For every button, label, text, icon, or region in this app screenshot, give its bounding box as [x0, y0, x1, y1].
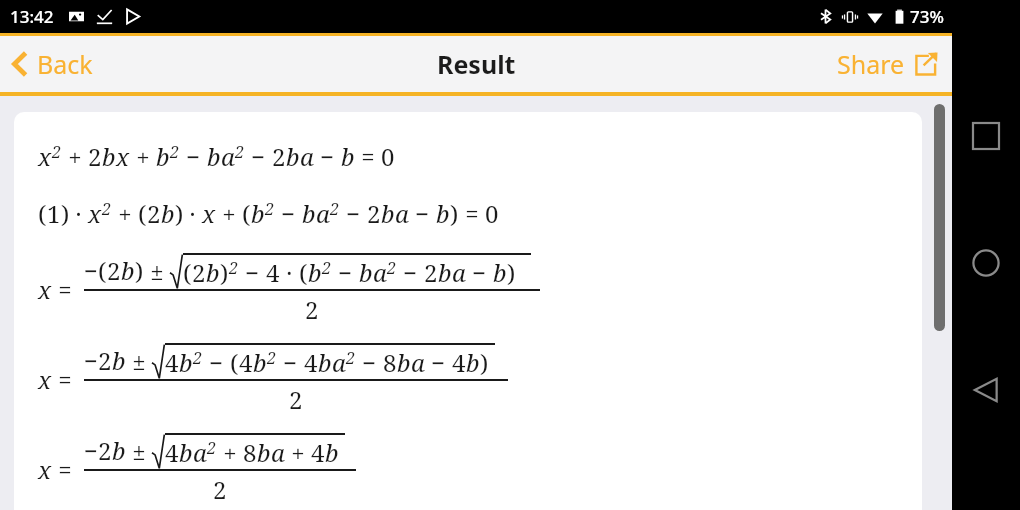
staticText: x	[38, 140, 52, 173]
staticText: ) ·	[175, 197, 202, 230]
staticText: )	[220, 256, 229, 289]
staticText: )	[450, 197, 459, 230]
staticText: 2	[207, 437, 217, 459]
staticText: −	[84, 254, 98, 287]
staticText: =	[52, 363, 78, 396]
staticText: 2	[272, 140, 286, 173]
staticText: )	[507, 256, 516, 289]
staticText: (	[230, 346, 239, 379]
staticText: −	[275, 197, 302, 230]
staticText: 2	[193, 347, 203, 369]
staticText: +	[112, 197, 138, 230]
staticText: x	[38, 273, 52, 306]
staticText: (	[242, 197, 251, 230]
staticText: (	[138, 197, 147, 230]
staticText: 2	[98, 344, 112, 377]
staticText: −	[340, 197, 367, 230]
staticText: 0	[381, 140, 395, 173]
staticText: a	[452, 256, 466, 289]
staticText: −	[84, 344, 98, 377]
staticText: 2	[387, 257, 397, 279]
staticText: 8	[243, 436, 257, 469]
staticText: 2	[102, 198, 112, 220]
staticText: −	[356, 346, 383, 379]
staticText: b	[112, 434, 126, 467]
staticText: −	[239, 256, 266, 289]
staticText: b	[359, 256, 373, 289]
staticText: 4	[304, 346, 318, 379]
staticText: −	[203, 346, 230, 379]
staticText: 2	[330, 198, 340, 220]
staticText: −	[180, 140, 207, 173]
staticText: −	[84, 434, 98, 467]
staticText: +	[216, 197, 242, 230]
staticText: b	[207, 140, 221, 173]
staticText: 2	[265, 198, 275, 220]
staticText: b	[112, 344, 126, 377]
staticText: −	[245, 140, 272, 173]
staticText: 4	[165, 436, 179, 469]
staticText: 2	[424, 256, 438, 289]
button[interactable]: Back	[0, 36, 109, 92]
staticText: b	[341, 140, 355, 173]
staticText: 2	[107, 254, 121, 287]
button[interactable]: Back	[962, 366, 1010, 414]
staticText: a	[332, 346, 346, 379]
staticText: (	[38, 197, 47, 230]
button[interactable]: Share	[821, 36, 952, 92]
staticText: b	[466, 346, 480, 379]
staticText: 2	[289, 383, 303, 416]
staticText: +	[130, 140, 156, 173]
staticText: a	[395, 197, 409, 230]
staticText: a	[316, 197, 330, 230]
staticText: 2	[52, 141, 62, 163]
staticText: b	[325, 436, 339, 469]
staticText: ±	[126, 344, 152, 377]
other: Share	[914, 52, 938, 76]
staticText: b	[156, 140, 170, 173]
staticText: =	[52, 273, 78, 306]
staticText: b	[206, 256, 220, 289]
staticText: b	[121, 254, 135, 287]
staticText: −	[314, 140, 341, 173]
staticText: )	[135, 254, 144, 287]
staticText: 2	[322, 257, 332, 279]
staticText: +	[62, 140, 88, 173]
staticText: 4	[266, 256, 280, 289]
staticText: b	[493, 256, 507, 289]
staticText: b	[302, 197, 316, 230]
staticText: b	[438, 256, 452, 289]
staticText: 2	[367, 197, 381, 230]
staticText: a	[411, 346, 425, 379]
staticText: =	[459, 197, 485, 230]
staticText: Share	[837, 47, 905, 81]
staticText: 2	[235, 141, 245, 163]
staticText: a	[300, 140, 314, 173]
button[interactable]: Recent apps	[962, 112, 1010, 160]
staticText: +	[285, 436, 311, 469]
staticText: 2	[305, 293, 319, 326]
staticText: b	[179, 346, 193, 379]
staticText: x	[38, 453, 52, 486]
staticText: 4	[452, 346, 466, 379]
staticText: b	[286, 140, 300, 173]
staticText: b	[251, 197, 265, 230]
staticText: b	[161, 197, 175, 230]
staticText: b	[257, 436, 271, 469]
staticText: b	[436, 197, 450, 230]
staticText: x	[202, 197, 216, 230]
button[interactable]: Home	[962, 239, 1010, 287]
staticText: 2	[213, 473, 227, 506]
staticText: 2	[229, 257, 239, 279]
staticText: 2	[88, 140, 102, 173]
staticText: 73%	[910, 5, 944, 28]
staticText: (	[183, 256, 192, 289]
staticText: b	[397, 346, 411, 379]
staticText: x	[88, 197, 102, 230]
staticText: 8	[383, 346, 397, 379]
staticText: Result	[437, 47, 516, 81]
staticText: 4	[165, 346, 179, 379]
staticText: )	[480, 346, 489, 379]
staticText: a	[373, 256, 387, 289]
staticText: ±	[126, 434, 152, 467]
